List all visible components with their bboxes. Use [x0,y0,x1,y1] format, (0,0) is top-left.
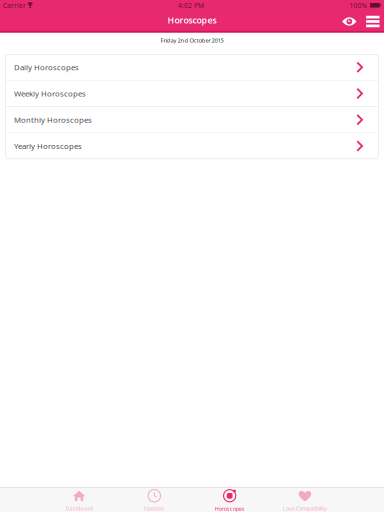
staticText: Horoscopes [167,14,216,26]
staticText: Monthly Horoscopes [14,114,92,125]
staticText: Carrier [3,1,26,10]
button[interactable]: Monthly Horoscopes [5,107,378,132]
button[interactable]: Yearly Horoscopes [5,133,378,159]
staticText: 4:02 PM [178,1,204,10]
button[interactable]: Preview [336,12,364,30]
staticText: Updates [144,505,165,512]
staticText: Yearly Horoscopes [14,141,82,151]
staticText: Friday 2nd October 2015 [160,36,223,44]
staticText: Love Compatibility [283,505,327,512]
staticText: Dashboard [66,505,93,512]
button[interactable]: Weekly Horoscopes [5,81,378,106]
staticText: Horoscopes [215,505,245,512]
staticText: 100% [349,1,367,10]
button[interactable]: Updates [117,488,192,512]
button[interactable]: Daily Horoscopes [5,54,378,80]
button[interactable]: Dashboard [41,488,117,512]
staticText: Weekly Horoscopes [14,88,86,99]
button[interactable]: Love Compatibility [267,488,343,512]
button[interactable]: Horoscopes [192,488,267,512]
button[interactable]: Menu [364,12,382,30]
staticText: Daily Horoscopes [14,62,79,72]
